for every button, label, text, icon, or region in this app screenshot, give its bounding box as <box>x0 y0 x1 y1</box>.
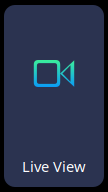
button[interactable]: Live View <box>4 5 104 187</box>
staticText: Live View <box>22 156 86 176</box>
